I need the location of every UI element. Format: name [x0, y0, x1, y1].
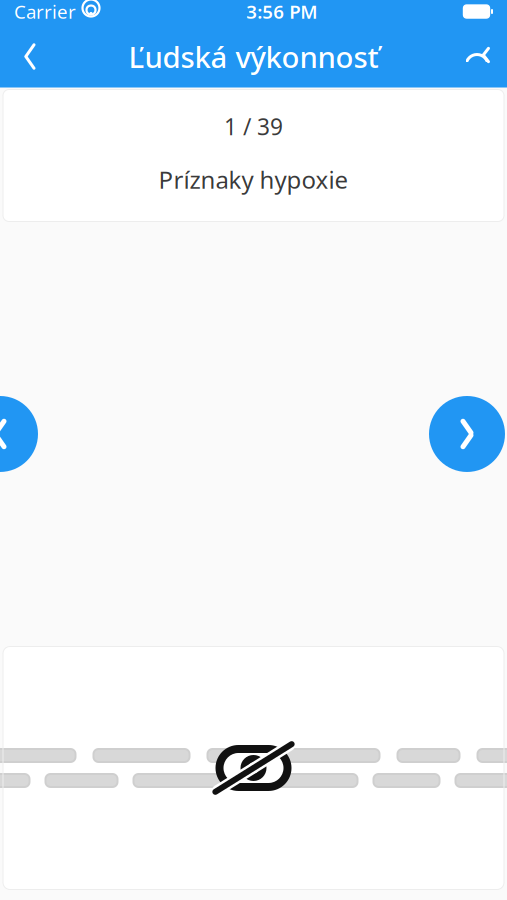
staticText: 1 / 39 — [224, 111, 283, 142]
staticText: Príznaky hypoxie — [158, 164, 348, 195]
button[interactable]: Previous — [0, 396, 38, 472]
button[interactable]: Next — [429, 396, 505, 472]
button[interactable]: Next section — [451, 28, 503, 84]
button[interactable]: Back — [4, 28, 56, 84]
staticText: Ľudská výkonnosť — [128, 37, 378, 76]
staticText: Carrier — [14, 0, 76, 24]
button[interactable]: Reveal answer — [3, 646, 504, 889]
staticText: 3:56 PM — [246, 0, 317, 24]
